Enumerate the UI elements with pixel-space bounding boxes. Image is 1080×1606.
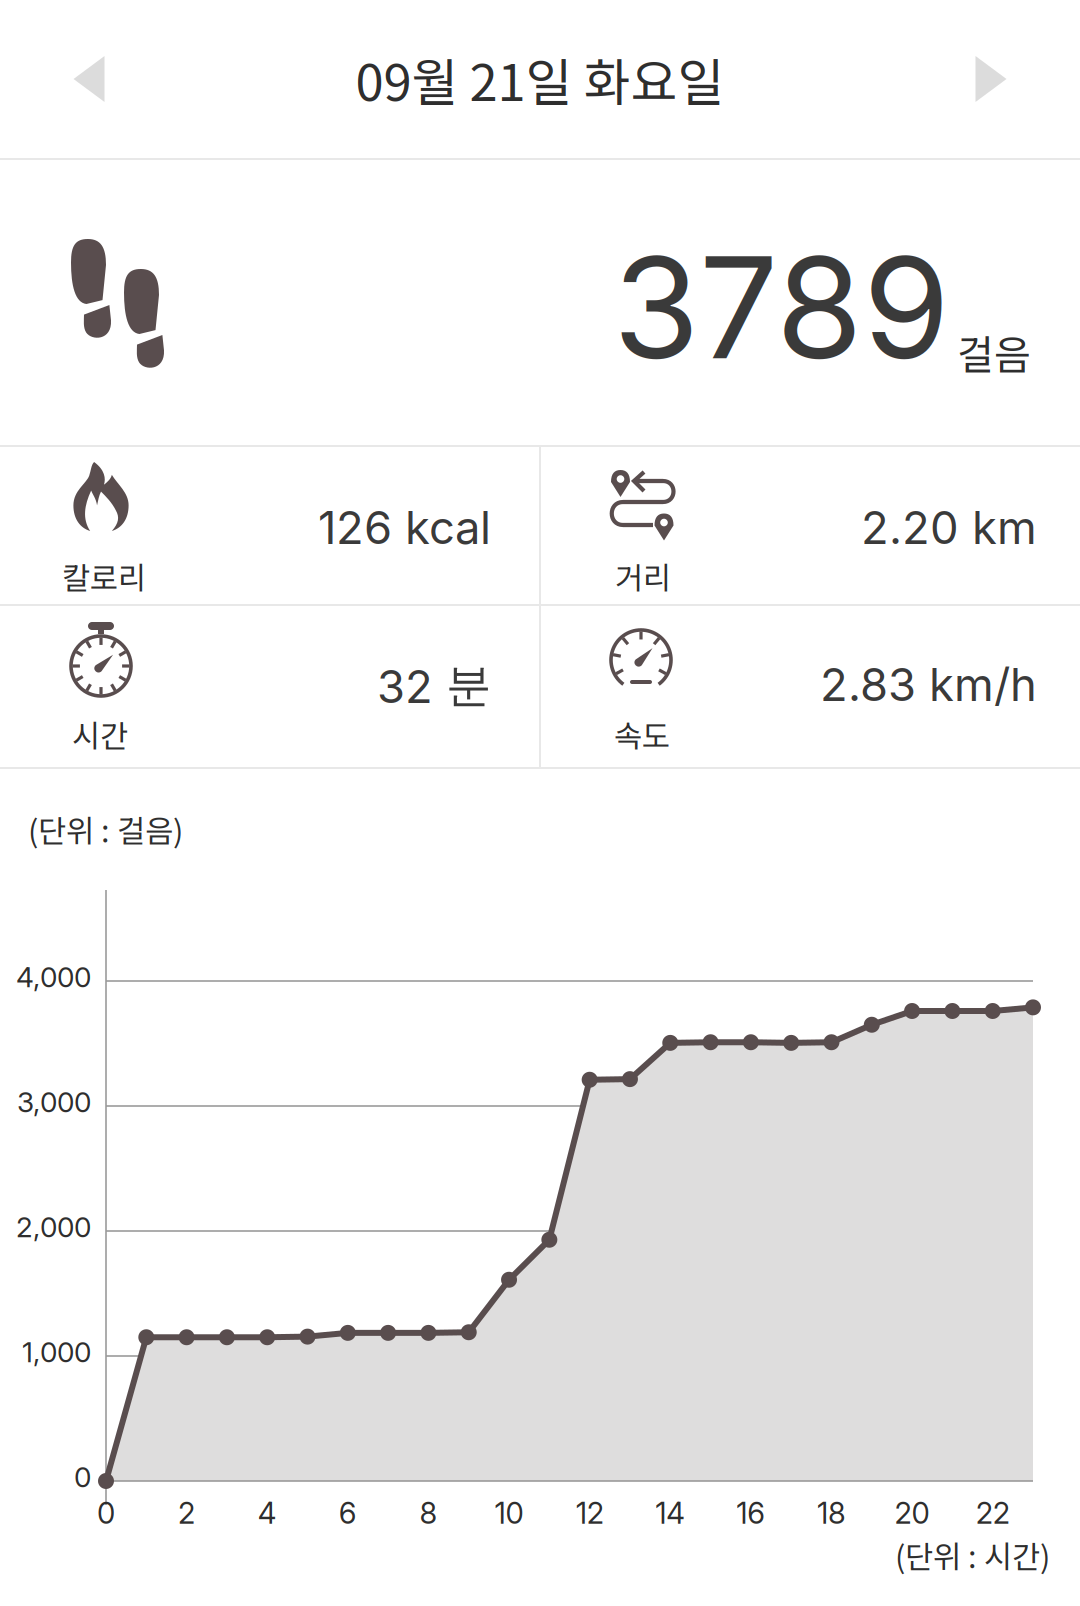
staticText: 4,000 (16, 960, 91, 994)
staticText: 09월 21일 화요일 (355, 42, 724, 116)
staticText: 126 kcal (318, 500, 491, 555)
staticText: 12 (576, 1495, 604, 1531)
staticText: 2 (178, 1495, 195, 1531)
button[interactable]: 거리 (541, 447, 1080, 604)
staticText: 2.20 km (861, 500, 1037, 555)
staticText: 4 (258, 1495, 277, 1531)
staticText: 속도 (614, 712, 670, 756)
staticText: (단위 : 시간) (895, 1533, 1050, 1577)
staticText: 22 (976, 1495, 1010, 1531)
staticText: (단위 : 걸음) (28, 807, 183, 851)
staticText: 20 (895, 1495, 930, 1531)
staticText: 시간 (72, 712, 128, 756)
staticText: 걸음 (957, 323, 1031, 381)
staticText: 1,000 (22, 1335, 91, 1369)
button[interactable]: 칼로리 (0, 447, 539, 604)
staticText: 16 (736, 1495, 765, 1531)
staticText: 32 분 (377, 657, 491, 714)
staticText: 6 (339, 1495, 357, 1531)
button[interactable]: Previous day (0, 0, 178, 158)
staticText: 3789 (613, 223, 950, 392)
staticText: 거리 (615, 554, 671, 598)
staticText: 8 (419, 1495, 437, 1531)
staticText: 10 (494, 1495, 523, 1531)
staticText: 2.83 km/h (820, 657, 1037, 712)
staticText: 14 (655, 1495, 685, 1531)
staticText: 3,000 (17, 1085, 91, 1119)
staticText: 2,000 (16, 1210, 91, 1244)
staticText: 18 (817, 1495, 846, 1531)
button[interactable]: 속도 (541, 606, 1080, 767)
staticText: 칼로리 (62, 554, 146, 598)
staticText: 0 (74, 1460, 91, 1494)
button[interactable]: Next day (902, 0, 1080, 158)
button[interactable]: 시간 (0, 606, 539, 767)
staticText: 0 (97, 1495, 115, 1531)
